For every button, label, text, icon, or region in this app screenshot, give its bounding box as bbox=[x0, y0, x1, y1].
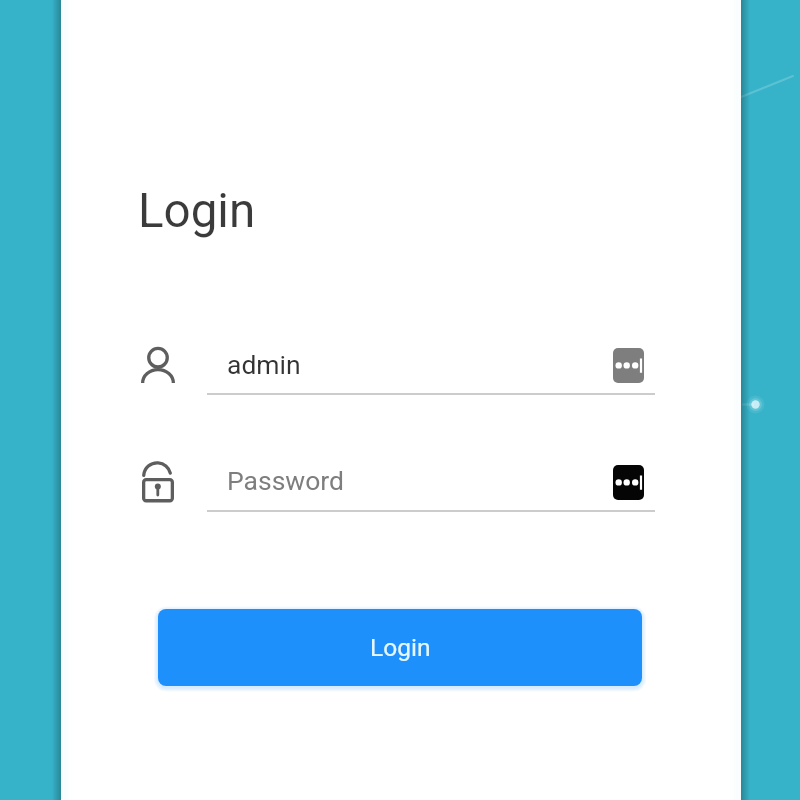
other: Account bbox=[141, 347, 175, 383]
button[interactable]: admin bbox=[207, 338, 655, 395]
staticText: Password bbox=[227, 465, 345, 496]
button[interactable]: Login bbox=[158, 609, 642, 686]
staticText: Login bbox=[370, 633, 431, 662]
button[interactable]: Password bbox=[207, 455, 655, 512]
button[interactable]: Show characters bbox=[613, 348, 644, 383]
button[interactable]: Show characters bbox=[613, 465, 644, 500]
staticText: Login bbox=[138, 183, 256, 239]
staticText: admin bbox=[227, 349, 301, 380]
other: Password bbox=[141, 462, 175, 504]
